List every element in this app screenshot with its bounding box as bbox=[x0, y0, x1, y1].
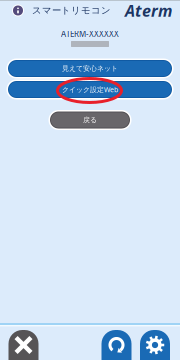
staticText: 見えて安心ネット bbox=[62, 64, 118, 73]
button[interactable]: Close bbox=[8, 330, 38, 360]
staticText: Aterm bbox=[125, 0, 172, 21]
staticText: スマートリモコン bbox=[32, 5, 111, 16]
button[interactable]: Information bbox=[10, 2, 26, 18]
staticText: ATERM-XXXXXX bbox=[61, 29, 119, 39]
button[interactable]: Refresh bbox=[101, 330, 131, 360]
button[interactable]: 見えて安心ネット bbox=[6, 58, 173, 78]
button[interactable]: 戻る bbox=[48, 110, 131, 130]
staticText: 戻る bbox=[83, 116, 97, 124]
button[interactable]: Settings bbox=[140, 330, 170, 360]
button[interactable]: クイック設定Web bbox=[6, 79, 173, 99]
staticText: クイック設定Web bbox=[62, 85, 118, 94]
